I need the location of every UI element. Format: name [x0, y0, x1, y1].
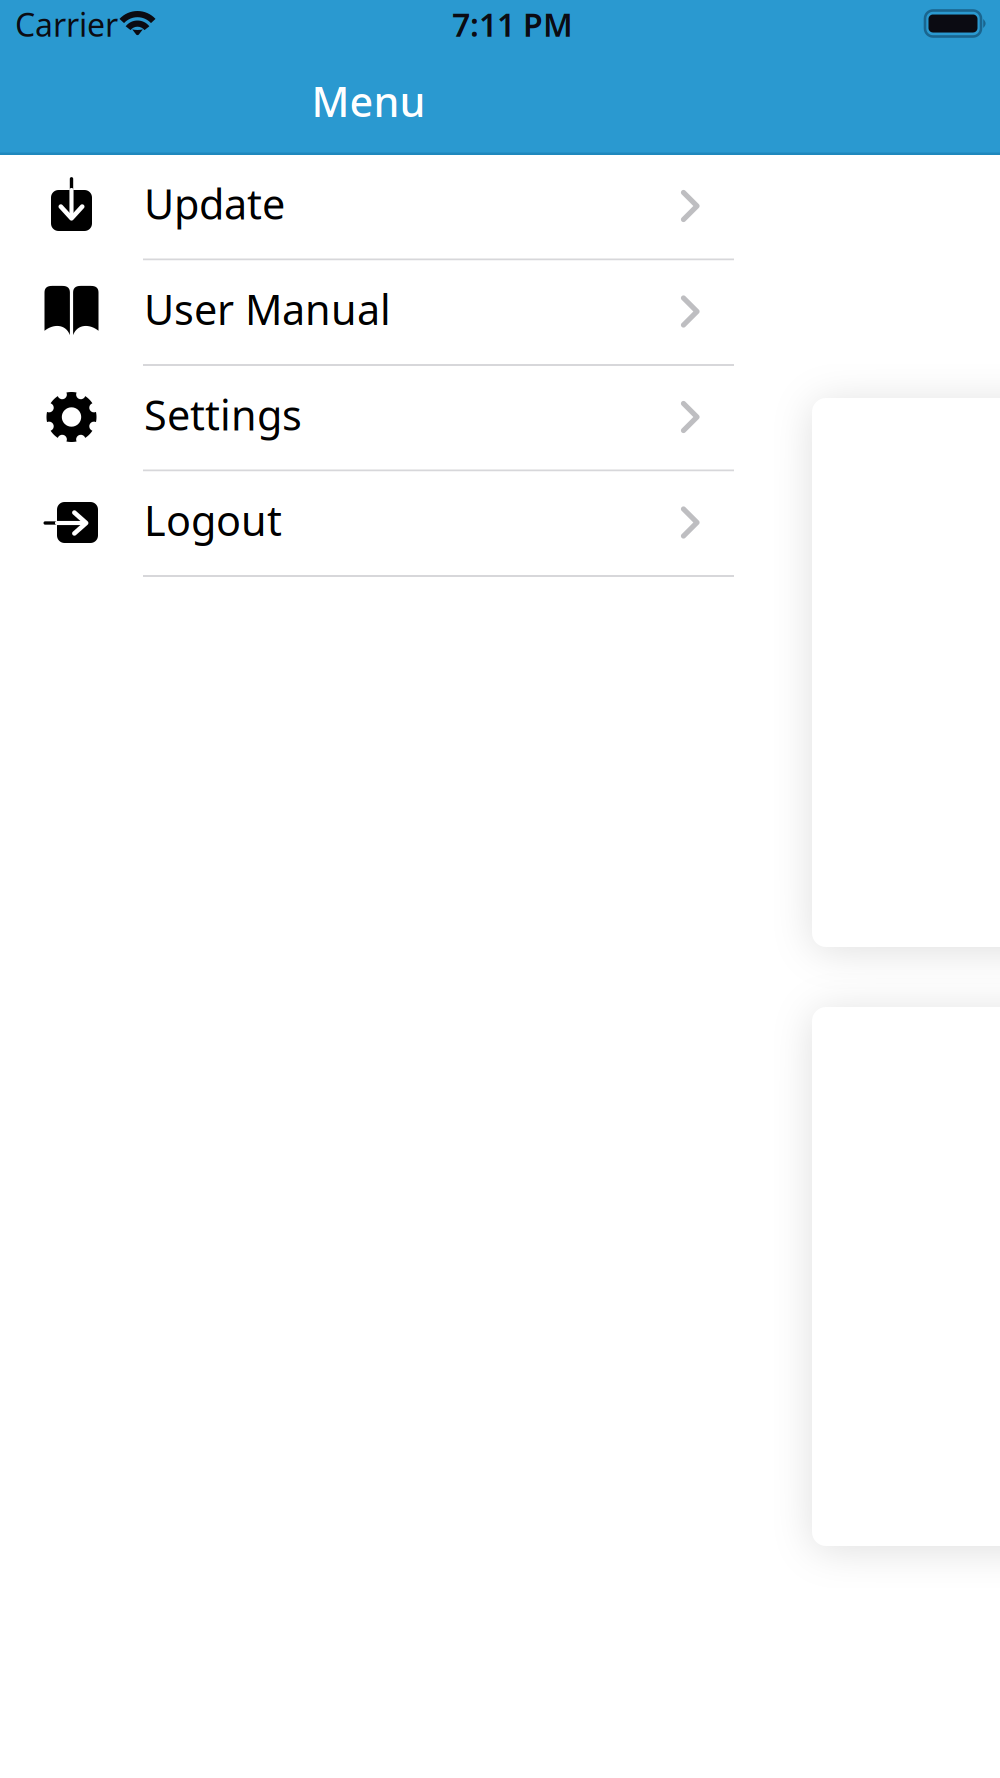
- staticText: Menu: [311, 74, 425, 128]
- button[interactable]: Settings: [0, 366, 737, 471]
- button[interactable]: Logout: [0, 471, 737, 577]
- button[interactable]: Update: [0, 155, 737, 260]
- staticText: Settings: [144, 387, 302, 442]
- staticText: Logout: [144, 492, 282, 547]
- staticText: Carrier: [15, 3, 118, 45]
- staticText: Update: [144, 176, 285, 231]
- staticText: 7:11 PM: [452, 3, 573, 45]
- button[interactable]: User Manual: [0, 260, 737, 366]
- staticText: User Manual: [144, 281, 391, 336]
